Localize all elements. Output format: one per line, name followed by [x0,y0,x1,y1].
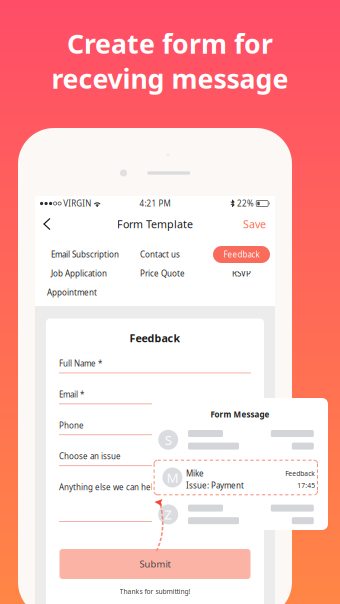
staticText: 22% [235,198,256,209]
button[interactable]: Save [234,211,275,237]
staticText: Job Application [51,268,107,279]
staticText: Feedback [223,249,259,260]
button[interactable]: Job Application [51,264,140,283]
staticText: Mike [186,468,204,479]
staticText: Feedback [285,469,315,478]
staticText: Save [243,217,266,231]
staticText: VIRGIN [61,198,93,209]
staticText: Full Name * [59,358,102,369]
staticText: Contact us [140,249,180,260]
button[interactable]: Appointment [47,283,136,302]
staticText: Issue: Payment [186,480,244,491]
staticText: Thanks for submitting! [119,587,190,596]
staticText: Z [164,505,172,523]
button[interactable]: Price Quote [140,264,212,283]
staticText: RSVP [232,268,251,279]
staticText: Phone [59,420,84,431]
staticText: Email Subscription [51,249,119,260]
staticText: Submit [139,558,170,570]
staticText: Feedback [129,331,180,345]
staticText: M [166,469,178,486]
button[interactable]: Submit [59,549,250,579]
staticText: Choose an issue [59,451,121,461]
staticText: Form Template [117,217,193,231]
button[interactable]: Email Subscription [51,245,140,264]
staticText: Form Message [210,409,269,420]
staticText: S [165,431,172,449]
staticText: Create form for [67,26,273,61]
button[interactable]: RSVP [212,264,271,283]
staticText: Email * [59,389,84,400]
staticText: 17:45 [297,481,315,490]
staticText: Price Quote [140,268,185,279]
button[interactable]: Back [35,212,60,236]
staticText: Anything else we can help [59,482,158,492]
staticText: receving message [51,61,288,96]
button[interactable]: Contact us [140,245,212,264]
staticText: 4:21 PM [139,198,170,209]
staticText: Appointment [47,287,97,298]
button[interactable]: Feedback [212,245,271,264]
